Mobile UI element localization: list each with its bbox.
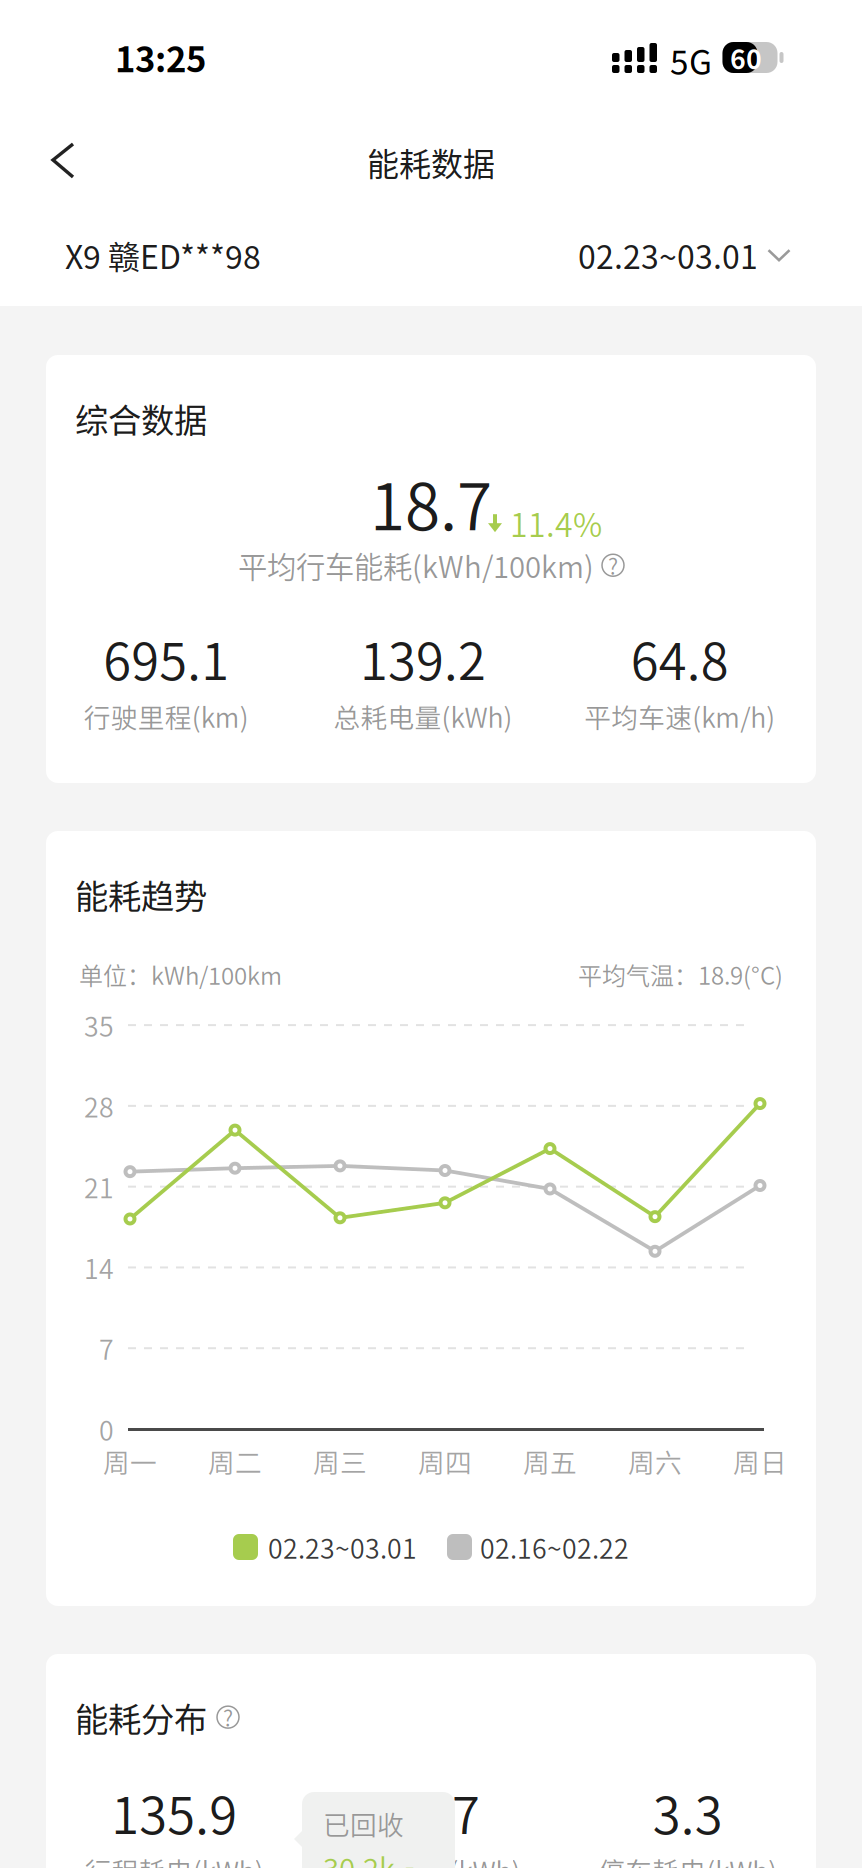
staticText: 能耗趋势 <box>75 870 207 918</box>
staticText: 11.4% <box>510 500 602 546</box>
staticText: 平均气温：18.9(°C) <box>578 957 783 992</box>
staticText: 7 <box>99 1329 114 1367</box>
staticText: 14 <box>84 1248 114 1287</box>
staticText: 周二 <box>208 1442 262 1480</box>
staticText: 64.8 <box>631 621 729 695</box>
staticText: ? <box>223 1701 233 1733</box>
staticText: 空调耗电(kWh) <box>341 1851 520 1868</box>
staticText: 35 <box>84 1006 114 1044</box>
staticText: 695.1 <box>103 621 229 695</box>
staticText: 02.23~03.01 <box>268 1528 417 1566</box>
staticText: 139.2 <box>360 621 486 695</box>
staticText: 综合数据 <box>75 394 207 442</box>
staticText: 总耗电量(kWh) <box>333 697 512 735</box>
staticText: 停车耗电(kWh) <box>598 1851 777 1868</box>
staticText: 周一 <box>103 1442 157 1480</box>
staticText: 02.16~02.22 <box>480 1528 629 1566</box>
button[interactable]: 返回 <box>16 116 92 192</box>
staticText: 0 <box>99 1410 114 1448</box>
staticText: 30.2kWh <box>323 1846 424 1868</box>
staticText: 24.7 <box>382 1775 480 1849</box>
button[interactable]: 02.23~03.01 <box>578 232 791 278</box>
staticText: 135.9 <box>111 1775 237 1849</box>
staticText: 21 <box>84 1167 114 1206</box>
staticText: 13:25 <box>115 32 206 82</box>
staticText: ? <box>608 549 618 581</box>
staticText: 02.23~03.01 <box>578 232 758 278</box>
staticText: 平均车速(km/h) <box>584 697 775 735</box>
staticText: 18.7 <box>370 456 492 549</box>
staticText: 60 <box>730 38 762 77</box>
staticText: 行驶里程(km) <box>84 697 249 735</box>
staticText: 周五 <box>523 1442 577 1480</box>
staticText: 周六 <box>628 1442 682 1480</box>
staticText: 行程耗电(kWh) <box>85 1851 264 1868</box>
staticText: 单位：kWh/100km <box>79 957 282 992</box>
staticText: 周四 <box>418 1442 472 1480</box>
staticText: 能耗分布 <box>75 1693 207 1741</box>
staticText: 周日 <box>733 1442 787 1480</box>
staticText: 能耗数据 <box>367 139 495 185</box>
staticText: 已回收 <box>323 1804 404 1843</box>
staticText: X9 赣ED***98 <box>65 232 261 278</box>
staticText: 平均行车能耗(kWh/100km) <box>238 544 594 586</box>
staticText: 5G <box>670 36 712 84</box>
staticText: 3.3 <box>653 1775 723 1849</box>
staticText: 周三 <box>313 1442 367 1480</box>
staticText: 28 <box>84 1087 114 1125</box>
